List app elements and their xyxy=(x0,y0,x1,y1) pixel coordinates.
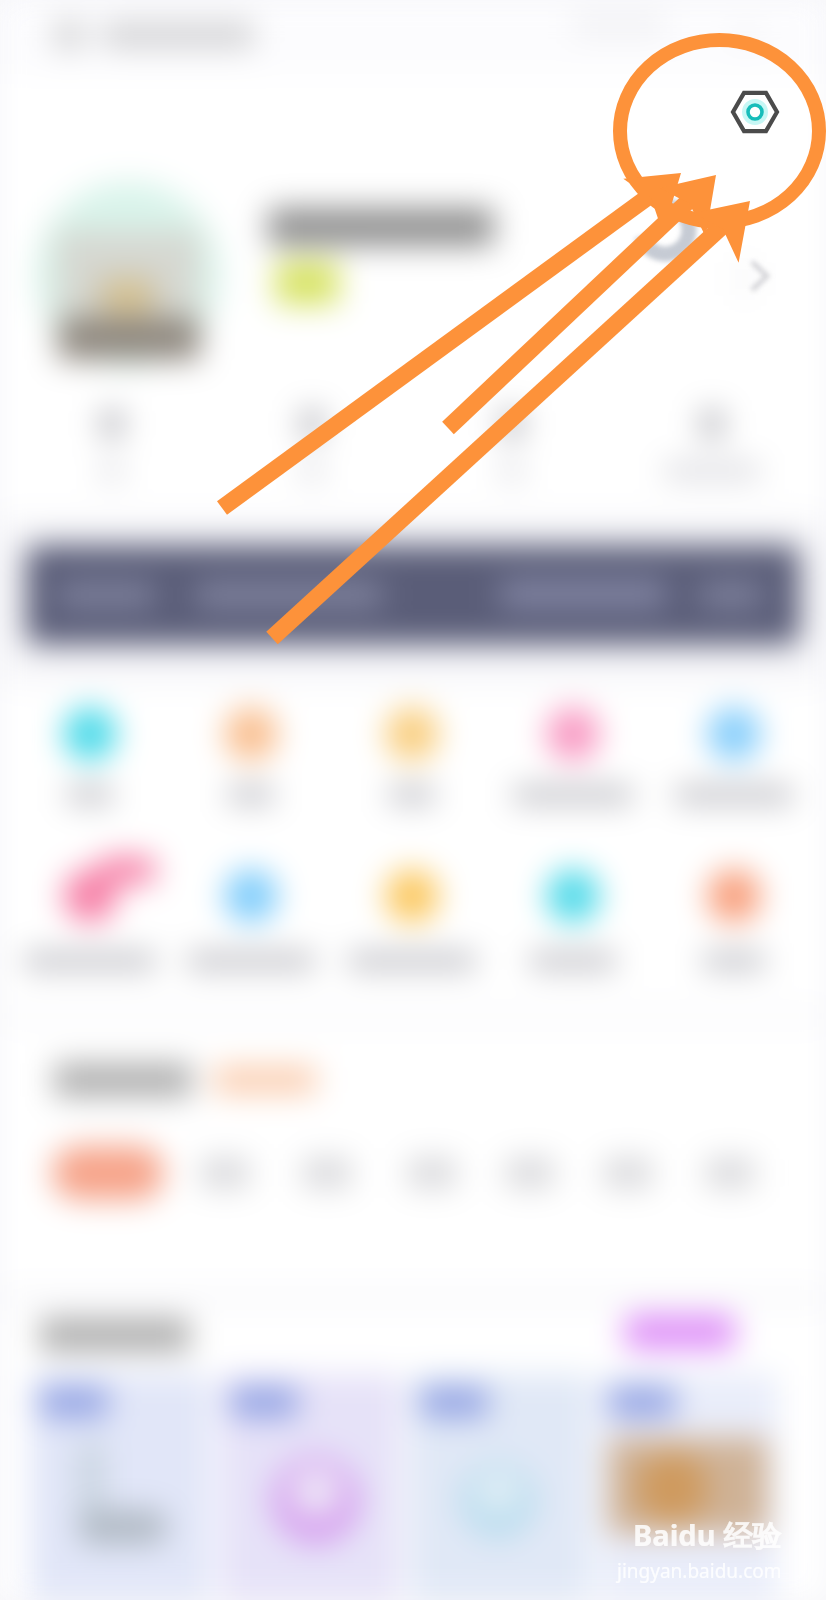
staticText: jingyan.baidu.com xyxy=(617,1558,782,1584)
button[interactable]: Settings xyxy=(729,86,781,138)
staticText: Baidu 经验 xyxy=(633,1515,782,1555)
